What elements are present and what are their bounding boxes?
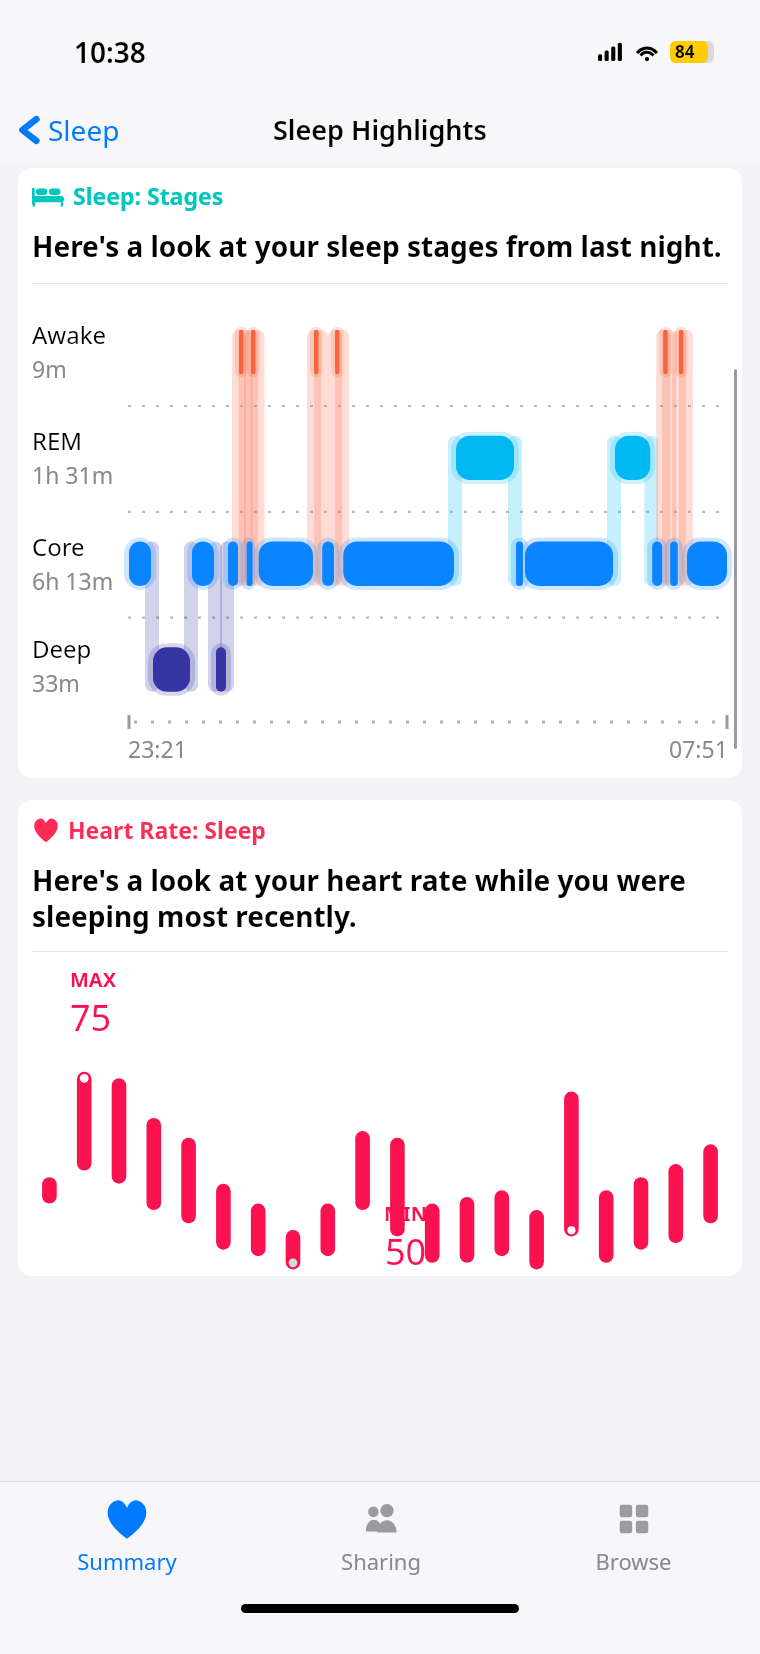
- staticText: 9m: [32, 353, 67, 384]
- staticText: Deep: [32, 632, 92, 665]
- staticText: 10:38: [74, 33, 146, 71]
- staticText: Here's a look at your sleep stages from …: [32, 227, 722, 265]
- staticText: 6h 13m: [32, 565, 114, 596]
- staticText: Sleep: Stages: [73, 180, 224, 211]
- button[interactable]: Sleep: [12, 105, 128, 155]
- staticText: Sharing: [341, 1546, 421, 1576]
- staticText: Summary: [77, 1546, 177, 1576]
- button[interactable]: Heart Rate: Sleep: [18, 800, 742, 1276]
- button[interactable]: Sharing: [254, 1482, 507, 1604]
- button[interactable]: Browse: [507, 1482, 760, 1604]
- staticText: 50: [385, 1227, 427, 1276]
- staticText: MIN: [384, 1200, 427, 1227]
- staticText: 07:51: [669, 733, 728, 764]
- staticText: 1h 31m: [32, 459, 114, 490]
- staticText: Heart Rate: Sleep: [68, 814, 266, 845]
- staticText: 75: [70, 993, 112, 1042]
- button[interactable]: Sleep: Stages: [18, 168, 742, 778]
- staticText: Here's a look at your heart rate while y…: [32, 861, 728, 935]
- staticText: REM: [32, 424, 83, 457]
- staticText: Sleep: [48, 111, 120, 149]
- staticText: Browse: [595, 1546, 672, 1576]
- button[interactable]: Summary: [0, 1482, 254, 1604]
- staticText: 23:21: [128, 733, 187, 764]
- staticText: Awake: [32, 318, 107, 351]
- staticText: 33m: [32, 667, 80, 698]
- staticText: Sleep Highlights: [273, 111, 487, 148]
- staticText: 84: [675, 40, 695, 63]
- staticText: MAX: [70, 966, 117, 993]
- staticText: Core: [32, 530, 85, 563]
